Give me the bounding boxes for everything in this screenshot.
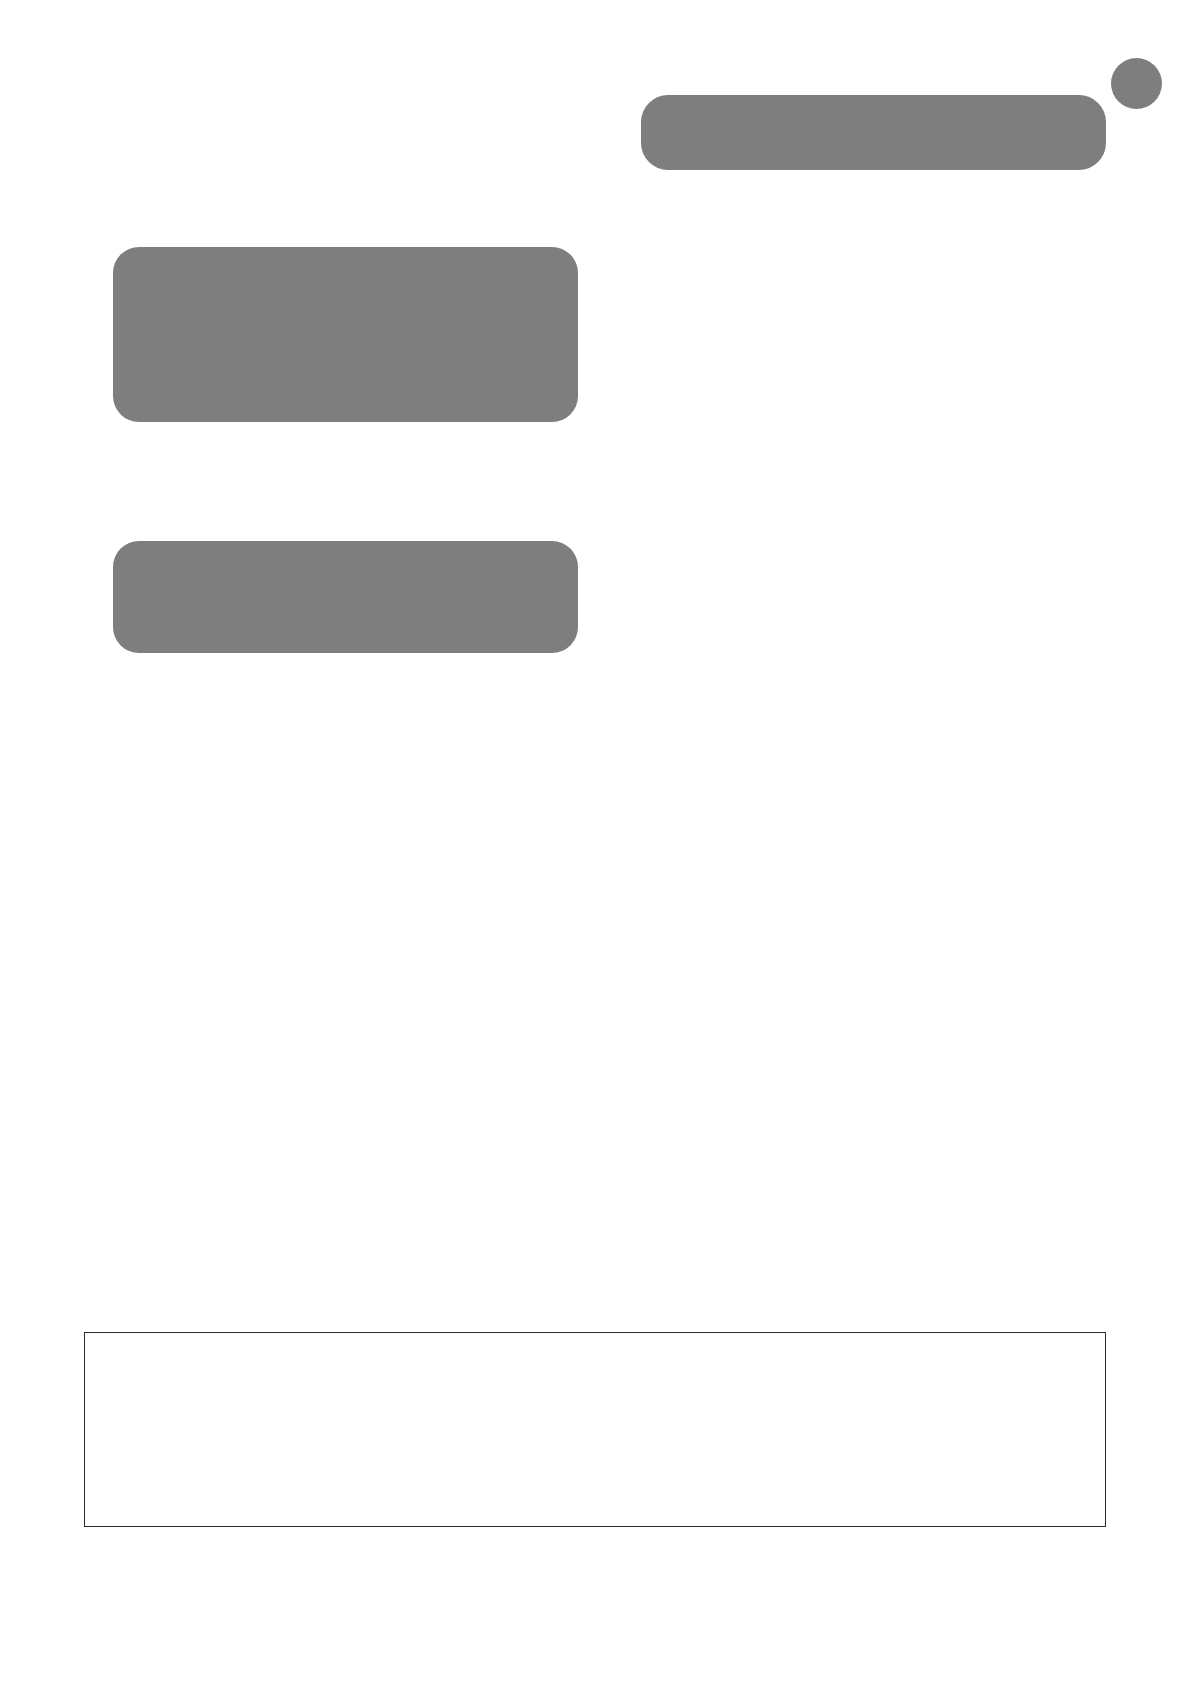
- button[interactable]: Featured item: [113, 247, 578, 422]
- button[interactable]: Details panel: [84, 1332, 1106, 1527]
- button[interactable]: Search: [641, 95, 1106, 170]
- button[interactable]: Account: [1111, 58, 1162, 109]
- button[interactable]: Second item: [113, 541, 578, 653]
